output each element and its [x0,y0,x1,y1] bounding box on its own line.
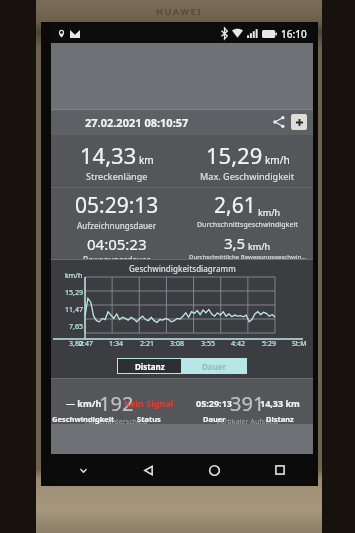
staticText: 3:55 [201,339,215,349]
button[interactable]: Startbildschirm [181,454,247,486]
staticText: 5:29 [262,339,276,349]
staticText: 2,61 [214,191,256,220]
staticText: 14,33 [80,140,137,170]
staticText: Aufzeichnungsdauer [77,220,157,231]
staticText: 3,82 [69,339,83,349]
staticText: Distanz [135,361,165,372]
staticText: Geschwindigkeitsdiagramm [129,263,236,274]
staticText: 05:29:13 [75,191,159,220]
staticText: Geschwindigkeit [52,414,115,424]
staticText: 27.02.2021 08:10:57 [85,115,189,130]
button[interactable]: Hinzufügen [291,114,307,130]
staticText: Dauer [203,414,226,424]
button[interactable]: Dauer [182,358,247,374]
staticText: 192 [99,390,134,417]
staticText: Durchschnittsgeschwindigkeit [197,220,299,230]
staticText: km/h [265,153,290,167]
staticText: 04:05:23 [87,234,147,254]
staticText: 3:08 [170,339,184,349]
button[interactable]: Zurück [116,454,181,486]
button[interactable]: Distanz [117,358,182,374]
staticText: Distanz [266,414,294,424]
staticText: 14,33 km [260,397,300,409]
staticText: Dauer [202,361,227,372]
staticText: km/h [258,206,281,218]
staticText: Status [137,414,161,424]
staticText: 16:10 [281,27,307,41]
staticText: Durchschnittliche Bewegungsgeschwin… [189,253,307,259]
staticText: km/h [65,271,83,281]
staticText: 4:42 [231,339,245,349]
staticText: Bewegungsdauer [83,254,151,259]
staticText: Höhenunterschied [85,417,148,424]
staticText: St:M [292,339,307,349]
staticText: 11,47 [65,305,83,315]
button[interactable]: Teilen [269,112,289,132]
staticText: Kein Signal [124,397,174,409]
staticText: km/h [248,240,271,252]
staticText: 0:47 [79,339,93,349]
staticText: 391 [230,390,265,417]
staticText: km [139,153,154,167]
staticText: 15,29 [65,288,83,298]
staticText: 15,29 [206,140,263,170]
button[interactable]: Übersicht [247,454,313,486]
staticText: 7,65 [69,322,83,332]
staticText: 05:29:13 [196,397,232,409]
staticText: 3,5 [224,233,246,253]
staticText: — km/h [66,397,102,409]
staticText: Vertikaler Aufstieg [216,417,279,424]
button[interactable]: Tastatur ausblenden [51,454,116,486]
staticText: 2:21 [140,339,154,349]
staticText: HUAWEI [156,5,203,17]
staticText: Max. Geschwindigkeit [200,170,295,182]
staticText: Streckenlänge [86,170,148,182]
staticText: 1:34 [109,339,123,349]
